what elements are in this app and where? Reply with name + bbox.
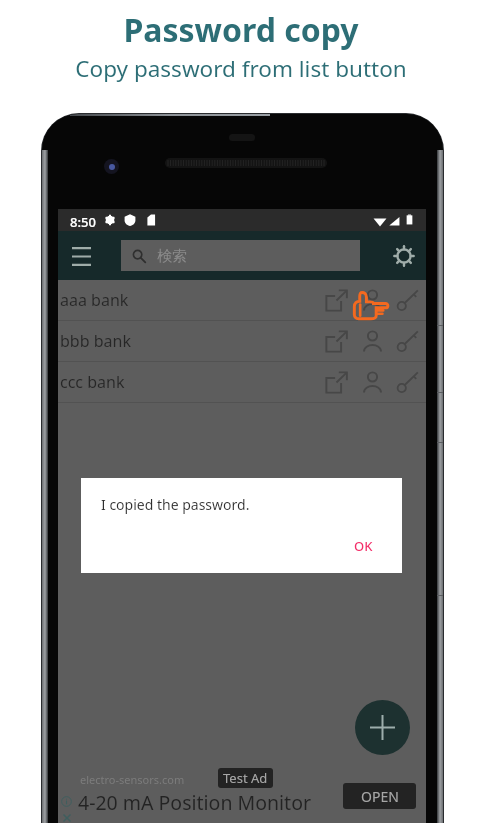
button[interactable]: ccc bank <box>58 362 426 402</box>
button[interactable]: Copy password <box>391 325 423 357</box>
button[interactable]: 検索 <box>121 240 360 271</box>
button[interactable]: Copy password <box>391 284 423 316</box>
staticText: ccc bank <box>60 371 125 393</box>
button[interactable]: OPEN <box>343 783 416 809</box>
button[interactable]: Open site <box>320 284 352 316</box>
staticText: I copied the password. <box>101 495 250 514</box>
staticText: OK <box>354 537 373 555</box>
button[interactable]: Copy user id <box>356 366 388 398</box>
button[interactable]: Copy user id <box>356 284 388 316</box>
staticText: Password copy <box>123 8 359 52</box>
button[interactable]: aaa bank <box>58 280 426 320</box>
staticText: 4-20 mA Position Monitor <box>78 789 311 816</box>
button[interactable]: Open site <box>320 325 352 357</box>
button[interactable]: OK <box>342 530 385 562</box>
staticText: electro-sensors.com <box>80 772 185 787</box>
staticText: aaa bank <box>60 289 129 311</box>
button[interactable]: Settings <box>386 238 422 274</box>
staticText: 8:50 <box>70 213 96 231</box>
button[interactable]: Open site <box>320 366 352 398</box>
button[interactable]: Add <box>355 700 410 755</box>
staticText: OPEN <box>361 787 399 806</box>
staticText: 検索 <box>157 247 187 266</box>
staticText: Test Ad <box>223 769 268 787</box>
button[interactable]: Copy password <box>391 366 423 398</box>
button[interactable]: Menu <box>63 238 99 274</box>
button[interactable]: Copy user id <box>356 325 388 357</box>
staticText: bbb bank <box>60 330 131 352</box>
staticText: Copy password from list button <box>75 53 407 84</box>
button[interactable]: bbb bank <box>58 321 426 361</box>
